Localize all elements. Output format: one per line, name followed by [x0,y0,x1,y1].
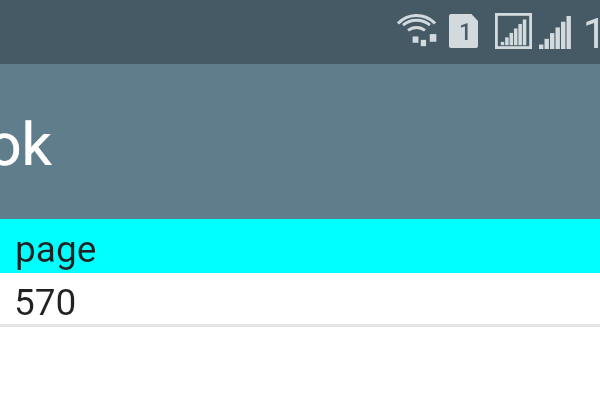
staticText: 1 [459,19,473,46]
other: SIM 1 [449,14,478,48]
staticText: 1 [583,9,600,58]
other: Mobile signal SIM 1 [495,13,532,49]
staticText: 570 [14,281,77,324]
button[interactable]: page [0,219,600,273]
other: Wi-Fi [397,13,436,47]
button[interactable]: 570 [0,273,600,324]
staticText: page [15,228,97,271]
other: Mobile signal SIM 2 [539,16,572,49]
staticText: Notebook [0,109,53,179]
